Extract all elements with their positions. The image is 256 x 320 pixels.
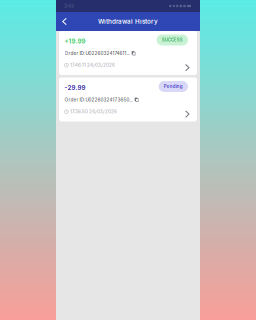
button[interactable]: +19.99 <box>59 31 197 75</box>
staticText: Order ID: U02260324174611... <box>64 50 129 56</box>
staticText: Withdrawal History <box>98 18 158 25</box>
staticText: Order ID: U02260324173650... <box>64 97 132 102</box>
staticText: SUCCESS <box>162 37 183 43</box>
button[interactable]: -29.99 <box>59 77 197 121</box>
staticText: +19.99 <box>64 37 85 45</box>
staticText: 3:43 <box>64 3 74 9</box>
staticText: Pending <box>164 84 183 89</box>
staticText: 17:36:50 24/03/2026 <box>70 109 117 114</box>
staticText: -29.99 <box>64 84 85 91</box>
staticText: 17:46:11 24/03/2026 <box>70 62 115 68</box>
button[interactable]: Back <box>56 12 73 31</box>
